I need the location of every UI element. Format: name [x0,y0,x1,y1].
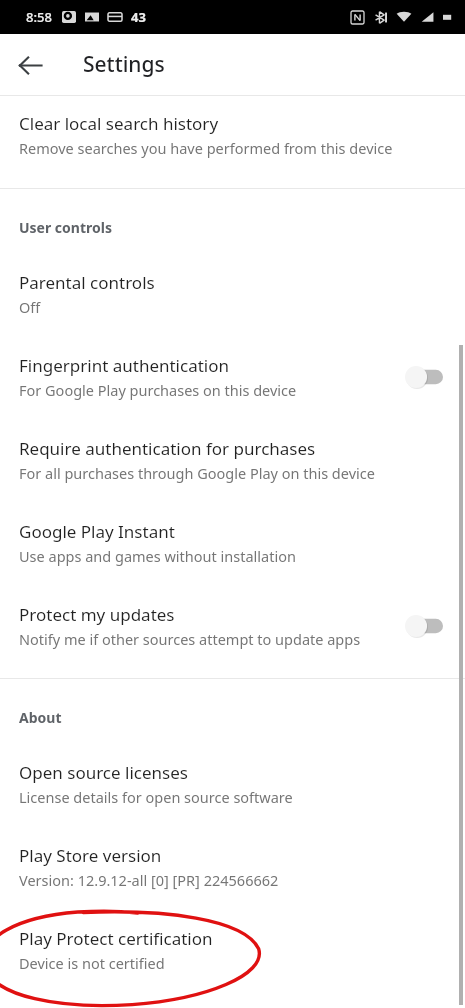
staticText: Remove searches you have performed from … [19,138,393,158]
staticText: For all purchases through Google Play on… [19,463,375,483]
staticText: Parental controls [19,271,155,294]
staticText: Notify me if other sources attempt to up… [19,629,361,649]
other: Toggle [405,614,443,638]
button[interactable]: Fingerprint authentication [0,345,465,428]
button[interactable]: Play Store version [0,835,465,918]
staticText: Settings [83,50,165,79]
button[interactable]: Play Protect certification [0,918,465,993]
staticText: Google Play Instant [19,520,175,543]
staticText: Fingerprint authentication [19,354,230,377]
button[interactable]: Clear local search history [0,96,465,188]
staticText: Play Store version [19,844,162,867]
button[interactable]: Back [8,43,52,87]
staticText: Open source licenses [19,761,188,784]
staticText: Use apps and games without installation [19,546,296,566]
staticText: About [19,708,62,727]
staticText: Protect my updates [19,603,175,626]
button[interactable]: Require authentication for purchases [0,428,465,511]
staticText: Play Protect certification [19,927,213,950]
button[interactable]: Google Play Instant [0,511,465,594]
staticText: Device is not certified [19,953,165,973]
staticText: Clear local search history [19,112,219,135]
staticText: User controls [19,218,112,237]
staticText: For Google Play purchases on this device [19,380,297,400]
staticText: Require authentication for purchases [19,437,316,460]
button[interactable]: Open source licenses [0,753,465,835]
button[interactable]: Parental controls [0,263,465,345]
staticText: 43 [131,8,146,26]
staticText: License details for open source software [19,787,293,807]
staticText: Off [19,297,41,317]
staticText: 8:58 [26,8,52,26]
button[interactable]: Protect my updates [0,594,465,678]
staticText: Version: 12.9.12-all [0] [PR] 224566662 [19,870,279,890]
other: Toggle [405,365,443,389]
